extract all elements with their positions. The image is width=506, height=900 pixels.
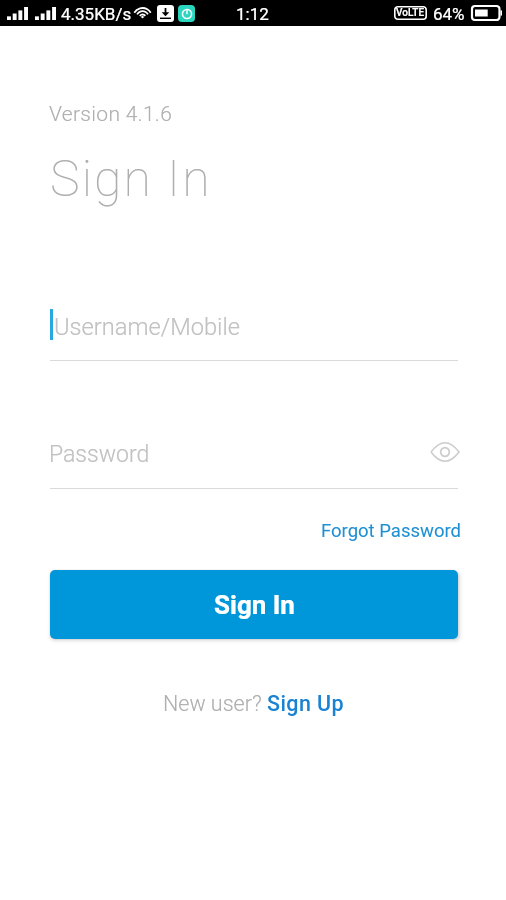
staticText: New user? [163, 691, 267, 716]
staticText: Sign Up [267, 691, 344, 716]
staticText: Version 4.1.6 [49, 102, 173, 127]
button[interactable]: Show password [431, 438, 459, 466]
staticText: Sign In [214, 590, 295, 620]
button[interactable]: Sign In [50, 570, 458, 639]
button[interactable]: Password [50, 432, 458, 489]
staticText: Password [49, 441, 150, 468]
staticText: 64% [433, 4, 465, 24]
staticText: Username/Mobile [54, 313, 240, 341]
button[interactable]: Sign Up [267, 691, 344, 716]
button[interactable]: Forgot Password [319, 518, 463, 544]
staticText: 4.35KB/s [61, 4, 132, 24]
button[interactable]: Username/Mobile [50, 300, 458, 362]
staticText: Forgot Password [321, 520, 461, 542]
staticText: VoLTE [396, 7, 425, 19]
staticText: 1:12 [236, 4, 269, 24]
staticText: Sign In [50, 150, 212, 209]
